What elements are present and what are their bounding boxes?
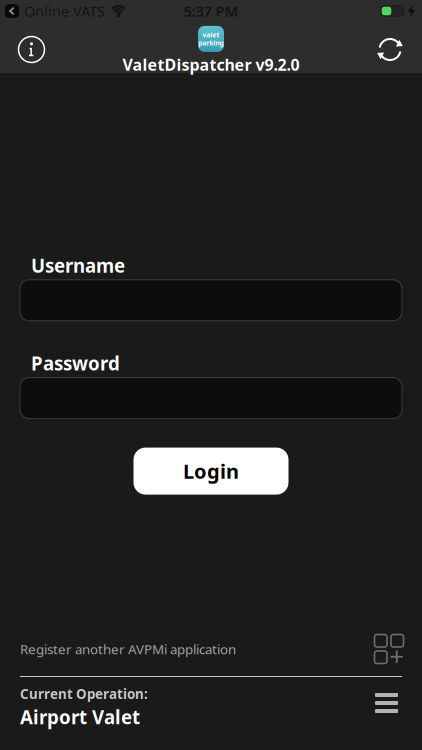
staticText: parking: [198, 38, 223, 47]
button[interactable]: Menu: [375, 693, 398, 713]
button[interactable]: Info: [18, 36, 45, 63]
staticText: Password: [31, 351, 120, 376]
staticText: Login: [183, 458, 239, 484]
staticText: Online VATS: [24, 1, 105, 21]
staticText: Register another AVPMi application: [20, 640, 236, 658]
staticText: Current Operation:: [20, 685, 148, 703]
staticText: valet: [202, 30, 219, 39]
button[interactable]: Register another AVPMi application: [0, 633, 422, 665]
staticText: Airport Valet: [20, 705, 140, 729]
staticText: Username: [31, 253, 125, 278]
staticText: ValetDispatcher v9.2.0: [122, 54, 299, 75]
button[interactable]: Refresh: [376, 35, 404, 63]
button[interactable]: Login: [133, 448, 288, 495]
staticText: 5:37 PM: [183, 1, 238, 21]
